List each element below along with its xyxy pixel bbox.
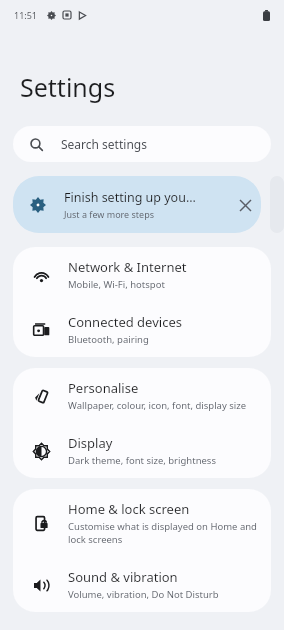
staticText: Wallpaper, colour, icon, font, display s…: [68, 399, 247, 412]
staticText: Mobile, Wi-Fi, hotspot: [68, 278, 165, 291]
staticText: Just a few more steps: [64, 208, 155, 220]
button[interactable]: Sound & vibration: [13, 557, 271, 612]
staticText: Volume, vibration, Do Not Disturb: [68, 588, 219, 601]
staticText: 11:51: [14, 9, 38, 21]
staticText: Bluetooth, pairing: [68, 333, 149, 346]
staticText: Home & lock screen: [68, 500, 190, 518]
staticText: Display: [68, 434, 113, 452]
staticText: Customise what is displayed on Home and …: [68, 520, 259, 546]
button[interactable]: Personalise: [13, 368, 271, 423]
staticText: Personalise: [68, 379, 139, 397]
staticText: Settings: [20, 70, 116, 104]
button[interactable]: Home & lock screen: [13, 489, 271, 557]
button[interactable]: Network & Internet: [13, 247, 271, 302]
button[interactable]: Display: [13, 423, 271, 478]
staticText: Finish setting up you...: [64, 189, 196, 206]
button[interactable]: Dismiss suggestion: [229, 189, 261, 221]
button[interactable]: Search settings: [13, 126, 271, 162]
button[interactable]: Connected devices: [13, 302, 271, 357]
staticText: Connected devices: [68, 313, 182, 331]
staticText: Dark theme, font size, brightness: [68, 454, 216, 467]
button[interactable]: Finish setting up you...: [13, 176, 261, 233]
staticText: Search settings: [61, 136, 147, 152]
staticText: Network & Internet: [68, 258, 187, 276]
staticText: Sound & vibration: [68, 568, 178, 586]
